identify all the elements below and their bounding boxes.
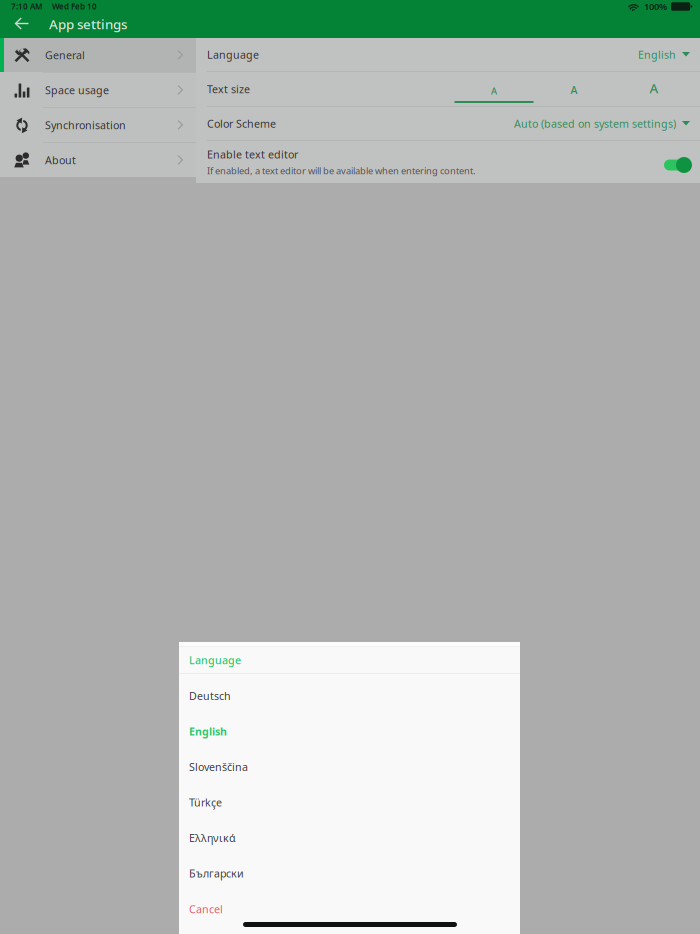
staticText: Language bbox=[189, 653, 241, 667]
button[interactable]: A bbox=[454, 72, 534, 106]
button[interactable]: Български bbox=[179, 855, 520, 891]
staticText: Language bbox=[207, 47, 259, 62]
staticText: A bbox=[649, 79, 658, 97]
button[interactable]: Ελληνικά bbox=[179, 820, 520, 855]
staticText: English bbox=[189, 724, 227, 738]
button[interactable]: Space usage bbox=[0, 73, 196, 107]
staticText: Slovenščina bbox=[189, 760, 248, 774]
button[interactable]: Synchronisation bbox=[0, 108, 196, 142]
staticText: Cancel bbox=[189, 902, 223, 916]
staticText: Auto (based on system settings) bbox=[514, 116, 676, 131]
staticText: If enabled, a text editor will be availa… bbox=[207, 164, 476, 177]
staticText: Ελληνικά bbox=[189, 831, 236, 845]
button[interactable]: Deutsch bbox=[179, 678, 520, 713]
staticText: Synchronisation bbox=[45, 118, 126, 132]
staticText: About bbox=[45, 153, 76, 167]
staticText: 100% bbox=[644, 0, 667, 13]
button[interactable]: Language bbox=[196, 38, 700, 71]
button[interactable]: Türkçe bbox=[179, 784, 520, 820]
staticText: Wed Feb 10 bbox=[52, 1, 97, 12]
button[interactable]: General bbox=[0, 38, 196, 72]
staticText: Text size bbox=[207, 82, 250, 96]
button[interactable]: Back bbox=[0, 13, 44, 35]
button[interactable]: Cancel bbox=[179, 891, 520, 927]
staticText: Space usage bbox=[45, 83, 109, 97]
staticText: General bbox=[45, 48, 85, 62]
button[interactable]: English bbox=[179, 713, 520, 749]
staticText: A bbox=[570, 83, 577, 97]
staticText: Enable text editor bbox=[207, 147, 298, 161]
staticText: 7:10 AM bbox=[11, 1, 42, 12]
staticText: English bbox=[638, 47, 676, 62]
button[interactable]: A bbox=[534, 72, 614, 106]
staticText: Color Scheme bbox=[207, 116, 276, 131]
staticText: Türkçe bbox=[189, 795, 222, 809]
staticText: Български bbox=[189, 866, 244, 880]
staticText: A bbox=[491, 85, 497, 97]
button[interactable]: About bbox=[0, 143, 196, 177]
staticText: Deutsch bbox=[189, 689, 231, 703]
staticText: App settings bbox=[49, 15, 127, 33]
button[interactable]: Enable text editor bbox=[196, 141, 700, 183]
button[interactable]: Color Scheme bbox=[196, 107, 700, 140]
button[interactable]: A bbox=[614, 72, 694, 106]
button[interactable]: Slovenščina bbox=[179, 749, 520, 784]
